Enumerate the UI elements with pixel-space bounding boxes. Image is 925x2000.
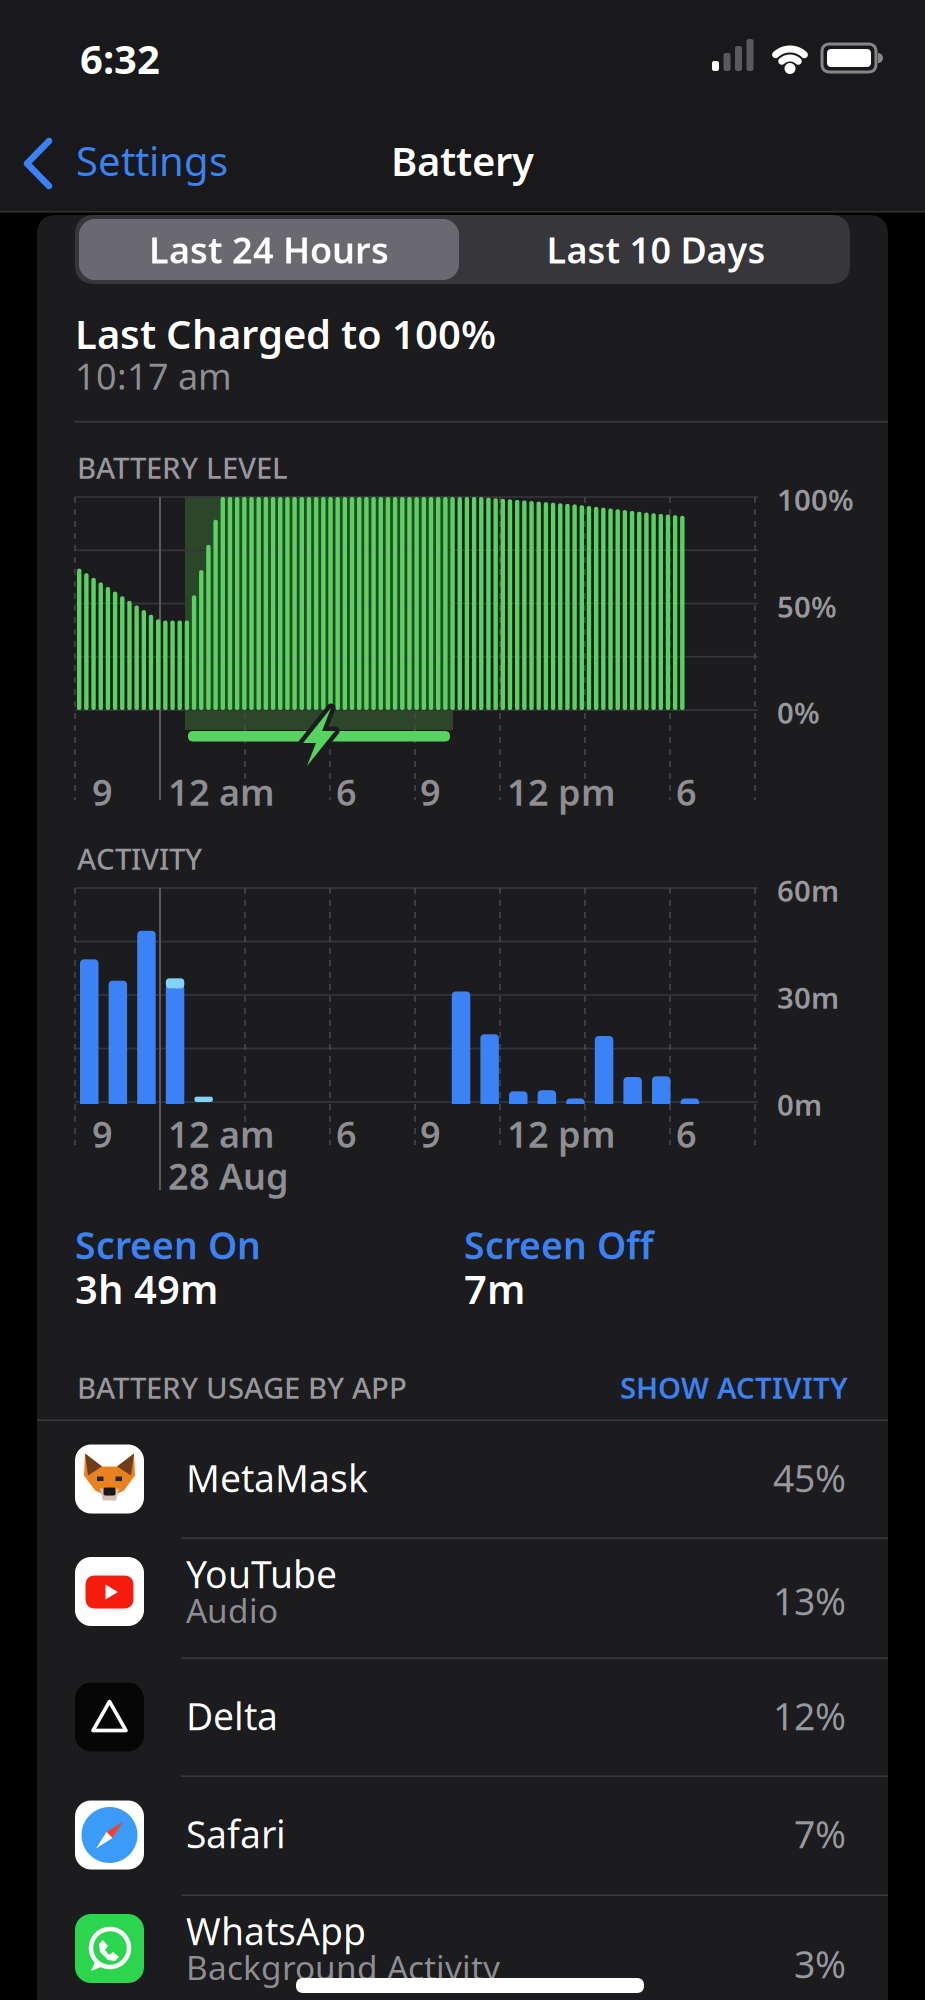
staticText: ACTIVITY: [77, 839, 202, 878]
staticText: 12 am: [168, 768, 275, 816]
staticText: 6:32: [80, 32, 160, 85]
staticText: 0m: [777, 1085, 822, 1124]
staticText: 6: [336, 768, 357, 816]
staticText: BATTERY USAGE BY APP: [77, 1368, 407, 1407]
staticText: Delta: [186, 1691, 278, 1741]
staticText: 60m: [777, 871, 839, 910]
staticText: Safari: [186, 1809, 286, 1859]
staticText: Screen Off: [464, 1220, 654, 1270]
staticText: WhatsApp: [186, 1906, 366, 1956]
staticText: 45%: [773, 1453, 846, 1503]
staticText: 7%: [794, 1809, 846, 1859]
button[interactable]: Last 10 Days: [466, 219, 846, 280]
staticText: 13%: [773, 1576, 846, 1626]
staticText: MetaMask: [186, 1453, 368, 1503]
staticText: Battery: [391, 134, 534, 187]
button[interactable]: YouTube: [37, 1538, 888, 1658]
button[interactable]: WhatsApp: [37, 1895, 888, 2000]
button[interactable]: Delta: [37, 1658, 888, 1776]
staticText: 9: [420, 1110, 441, 1158]
button[interactable]: Safari: [37, 1776, 888, 1895]
button[interactable]: MetaMask: [37, 1420, 888, 1538]
staticText: 6: [336, 1110, 357, 1158]
staticText: 12 pm: [507, 768, 616, 816]
staticText: 12 am: [168, 1110, 275, 1158]
staticText: BATTERY LEVEL: [77, 448, 288, 487]
staticText: Last 10 Days: [546, 226, 765, 273]
staticText: Settings: [76, 134, 228, 187]
staticText: 7m: [464, 1262, 525, 1315]
staticText: 6: [676, 768, 697, 816]
staticText: YouTube: [186, 1549, 337, 1599]
staticText: 6: [676, 1110, 697, 1158]
staticText: 30m: [777, 978, 839, 1017]
staticText: Screen On: [75, 1220, 261, 1270]
staticText: 3h 49m: [75, 1262, 218, 1315]
staticText: 3%: [794, 1939, 846, 1989]
button[interactable]: SHOW ACTIVITY: [0, 1368, 848, 1407]
staticText: Audio: [186, 1588, 278, 1632]
staticText: 10:17 am: [75, 352, 232, 400]
staticText: 50%: [777, 587, 837, 626]
staticText: 28 Aug: [168, 1152, 289, 1200]
staticText: 9: [92, 1110, 113, 1158]
staticText: 12%: [773, 1691, 846, 1741]
staticText: 0%: [777, 693, 820, 732]
staticText: Last Charged to 100%: [75, 307, 496, 360]
staticText: 12 pm: [507, 1110, 616, 1158]
staticText: 100%: [777, 480, 854, 519]
staticText: SHOW ACTIVITY: [620, 1368, 848, 1407]
button[interactable]: Last 24 Hours: [79, 219, 459, 280]
staticText: 9: [92, 768, 113, 816]
button[interactable]: Back: [0, 0, 240, 104]
staticText: Background Activity: [186, 1945, 500, 1989]
staticText: 9: [420, 768, 441, 816]
staticText: Last 24 Hours: [149, 226, 389, 273]
